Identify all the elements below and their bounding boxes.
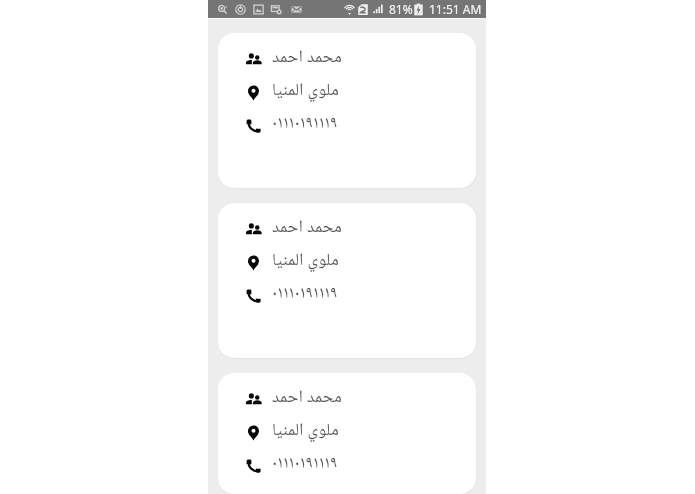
staticText: 11:51 AM (429, 1, 482, 17)
other: Contact name (245, 52, 263, 70)
other: Address (245, 425, 263, 443)
other: Address (245, 255, 263, 273)
other: Phone number (245, 458, 263, 476)
button[interactable]: Contact name (218, 203, 476, 358)
staticText: محمد احمد (272, 46, 343, 69)
staticText: ملوي المنيا (272, 419, 339, 442)
staticText: 81% (389, 1, 413, 17)
other: Phone number (245, 288, 263, 306)
button[interactable]: Contact name (218, 373, 476, 494)
other: Phone number (245, 118, 263, 136)
button[interactable]: Contact name (218, 33, 476, 188)
other: Contact name (245, 392, 263, 410)
staticText: ٠١١١٠١٩١١١٩ (272, 282, 338, 305)
other: Contact name (245, 222, 263, 240)
staticText: ٠١١١٠١٩١١١٩ (272, 112, 338, 135)
staticText: محمد احمد (272, 216, 343, 239)
staticText: ملوي المنيا (272, 79, 339, 102)
staticText: ملوي المنيا (272, 249, 339, 272)
staticText: ٠١١١٠١٩١١١٩ (272, 452, 338, 475)
other: Address (245, 85, 263, 103)
staticText: محمد احمد (272, 386, 343, 409)
